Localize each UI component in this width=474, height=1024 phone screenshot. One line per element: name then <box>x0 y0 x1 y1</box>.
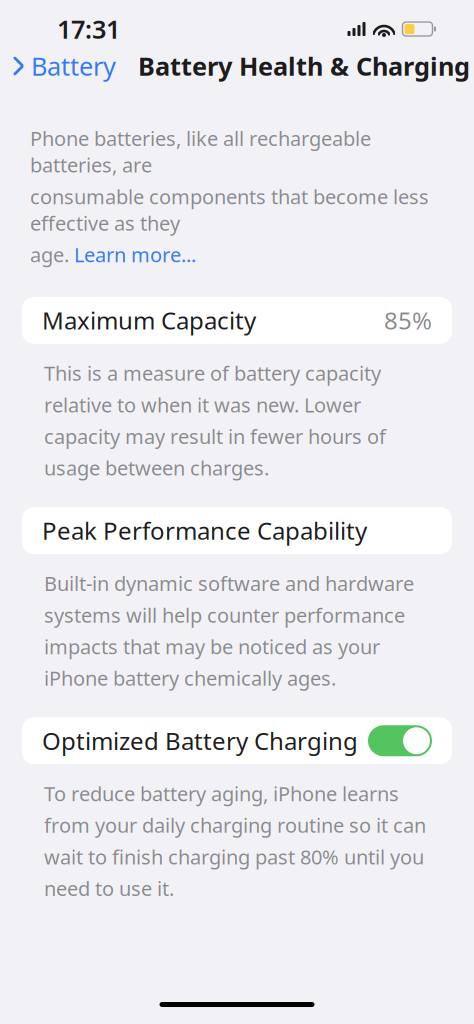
staticText: This is a measure of battery capacity re… <box>44 360 386 481</box>
staticText: Learn more... <box>74 241 196 268</box>
button[interactable]: Peak Performance Capability <box>22 507 452 554</box>
staticText: Phone batteries, like all rechargeable b… <box>30 125 371 178</box>
button[interactable]: Learn more... <box>74 241 196 268</box>
staticText: Battery Health & Charging <box>138 49 470 83</box>
staticText: consumable components that become less e… <box>30 183 429 236</box>
button[interactable]: Maximum Capacity <box>22 297 452 344</box>
staticText: Peak Performance Capability <box>42 515 367 546</box>
staticText: 85% <box>384 304 432 336</box>
staticText: age. <box>30 241 74 268</box>
staticText: Maximum Capacity <box>42 304 256 336</box>
staticText: 17:31 <box>57 12 120 46</box>
staticText: Battery <box>31 49 116 83</box>
staticText: Optimized Battery Charging <box>42 725 358 757</box>
staticText: To reduce battery aging, iPhone learns f… <box>44 780 426 901</box>
button[interactable]: Optimized Battery Charging <box>368 725 432 756</box>
staticText: Built-in dynamic software and hardware s… <box>44 570 414 691</box>
button[interactable]: Battery <box>0 41 124 91</box>
